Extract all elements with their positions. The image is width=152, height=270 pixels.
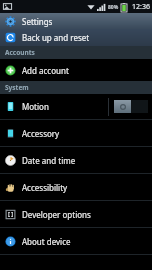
staticText: Accessory	[22, 128, 60, 139]
button[interactable]: Back up and reset	[0, 29, 152, 46]
button[interactable]: Motion	[0, 94, 152, 119]
button[interactable]: Add account	[0, 59, 152, 81]
staticText: Date and time	[22, 155, 76, 166]
staticText: Accounts	[5, 48, 35, 57]
button[interactable]: Accessory	[0, 120, 152, 146]
button[interactable]: Accessibility	[0, 174, 152, 200]
staticText: Back up and reset	[22, 32, 90, 43]
button[interactable]: Date and time	[0, 147, 152, 173]
staticText: 80%	[108, 4, 119, 11]
staticText: Add account	[22, 65, 69, 76]
staticText: About device	[22, 236, 71, 247]
staticText: Settings	[22, 16, 53, 27]
staticText: Developer options	[22, 209, 91, 220]
button[interactable]: Settings	[0, 13, 152, 29]
button[interactable]: About device	[0, 228, 152, 254]
staticText: Motion	[22, 101, 108, 112]
button[interactable]: Motion toggle	[114, 100, 148, 113]
staticText: Accessibility	[22, 182, 68, 193]
staticText: System	[5, 83, 29, 92]
staticText: 12:36	[132, 2, 150, 12]
button[interactable]: Developer options	[0, 201, 152, 227]
